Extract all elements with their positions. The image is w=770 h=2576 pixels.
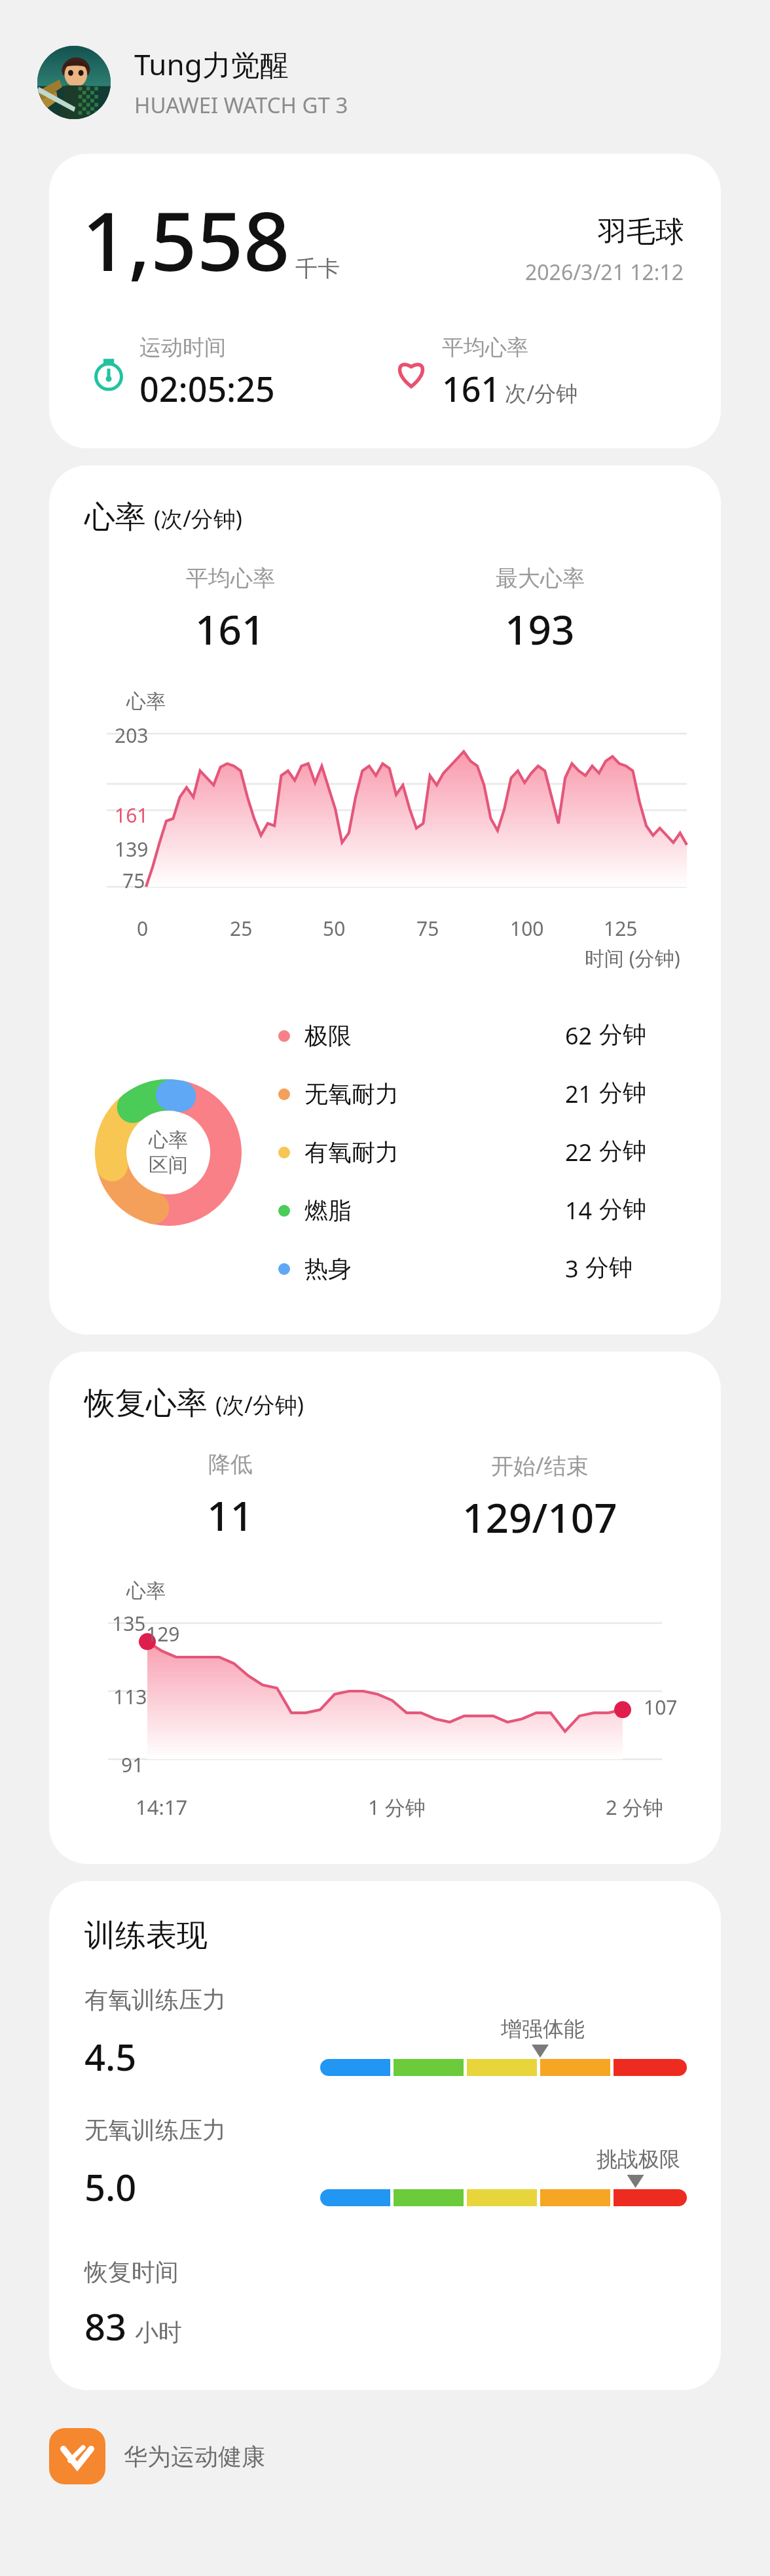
staticText: 分钟 [599, 1020, 646, 1049]
staticText: 心率 [126, 1579, 166, 1603]
staticText: 91 [121, 1751, 144, 1778]
staticText: 203 [115, 722, 149, 749]
staticText: 区间 [149, 1153, 188, 1177]
staticText: 羽毛球 [598, 214, 684, 250]
staticText: 100 [510, 915, 544, 942]
staticText: 2 分钟 [606, 1793, 663, 1821]
staticText: 1 分钟 [368, 1793, 426, 1821]
staticText: 75 [122, 867, 145, 894]
staticText: 161 [442, 365, 501, 412]
staticText: 心率 [149, 1128, 188, 1153]
staticText: 平均心率 [186, 564, 275, 592]
staticText: 分钟 [599, 1136, 646, 1166]
staticText: 25 [230, 915, 253, 942]
staticText: 139 [115, 836, 149, 863]
staticText: 161 [195, 601, 265, 656]
staticText: 心率 [84, 498, 146, 537]
staticText: 分钟 [585, 1253, 632, 1282]
staticText: 02:05:25 [139, 365, 275, 412]
other: 华为运动健康 [49, 2428, 105, 2484]
staticText: 恢复时间 [84, 2257, 179, 2287]
staticText: 50 [323, 915, 346, 942]
staticText: 193 [505, 601, 575, 656]
staticText: 运动时间 [139, 334, 226, 361]
staticText: 极限 [304, 1021, 352, 1050]
staticText: 次/分钟 [505, 378, 578, 408]
staticText: 最大心率 [496, 564, 585, 592]
staticText: 小时 [135, 2317, 182, 2347]
staticText: 135 [112, 1610, 146, 1637]
staticText: 增强体能 [501, 2016, 585, 2042]
staticText: 3 [565, 1253, 579, 1285]
staticText: 心率 [126, 689, 166, 714]
staticText: 11 [207, 1488, 253, 1543]
staticText: 2026/3/21 12:12 [525, 258, 684, 287]
staticText: 1,558 [82, 184, 290, 295]
staticText: 75 [416, 915, 439, 942]
staticText: 挑战极限 [596, 2146, 680, 2172]
staticText: 4.5 [84, 2031, 137, 2081]
staticText: 无氧训练压力 [84, 2115, 226, 2145]
staticText: 有氧训练压力 [84, 1985, 226, 2014]
staticText: 129 [146, 1620, 180, 1647]
staticText: 时间 (分钟) [585, 944, 680, 971]
staticText: 训练表现 [84, 1916, 208, 1955]
staticText: 热身 [304, 1254, 352, 1283]
staticText: 燃脂 [304, 1196, 352, 1225]
staticText: 83 [84, 2301, 127, 2351]
staticText: 分钟 [599, 1078, 646, 1107]
staticText: 21 [565, 1078, 593, 1110]
staticText: 161 [115, 802, 149, 829]
staticText: 华为运动健康 [124, 2442, 265, 2471]
staticText: 125 [604, 915, 638, 942]
staticText: 14:17 [136, 1793, 188, 1821]
button[interactable]: 华为运动健康 [49, 2428, 770, 2484]
staticText: 千卡 [295, 255, 340, 283]
staticText: 0 [137, 915, 149, 942]
staticText: 无氧耐力 [304, 1079, 399, 1109]
staticText: 22 [565, 1136, 593, 1168]
staticText: 有氧耐力 [304, 1137, 399, 1167]
staticText: 5.0 [84, 2162, 137, 2211]
staticText: 14 [565, 1194, 593, 1226]
staticText: 平均心率 [442, 334, 528, 361]
staticText: Tung力觉醒 [134, 45, 289, 84]
staticText: 107 [644, 1694, 678, 1721]
staticText: 129/107 [462, 1490, 617, 1545]
staticText: 分钟 [599, 1194, 646, 1224]
staticText: (次/分钟) [154, 503, 243, 533]
staticText: (次/分钟) [215, 1389, 304, 1420]
staticText: 开始/结束 [491, 1450, 589, 1480]
staticText: 113 [113, 1683, 147, 1710]
staticText: 62 [565, 1020, 593, 1052]
staticText: 恢复心率 [84, 1384, 208, 1423]
staticText: 降低 [208, 1450, 253, 1478]
staticText: HUAWEI WATCH GT 3 [134, 90, 348, 120]
